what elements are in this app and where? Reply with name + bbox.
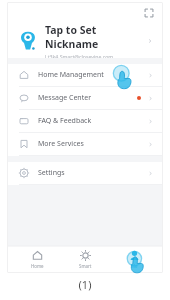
button[interactable]: Tap to Set Nickname [8, 23, 162, 58]
staticText: Message Center [38, 93, 137, 103]
staticText: Me [131, 263, 138, 269]
staticText: (1) [0, 277, 170, 292]
button[interactable]: Home Management [8, 64, 162, 86]
button[interactable]: Message Center [8, 87, 162, 109]
staticText: Settings [38, 168, 147, 178]
button[interactable]: Settings [8, 162, 162, 184]
staticText: Lt3k4 Smart@closeyine.com [45, 53, 114, 58]
staticText: More Services [38, 139, 147, 149]
staticText: FAQ & Feedback [38, 116, 147, 126]
button[interactable]: Me [114, 250, 154, 269]
button[interactable]: Smart [65, 250, 105, 269]
staticText: Tap to Set Nickname [45, 23, 146, 51]
staticText: Home Management [38, 70, 147, 80]
button[interactable]: Expand full screen [142, 6, 156, 20]
staticText: Smart [79, 263, 92, 269]
button[interactable]: Home [17, 250, 57, 269]
button[interactable]: FAQ & Feedback [8, 110, 162, 132]
staticText: Home [31, 263, 44, 269]
button[interactable]: More Services [8, 133, 162, 155]
